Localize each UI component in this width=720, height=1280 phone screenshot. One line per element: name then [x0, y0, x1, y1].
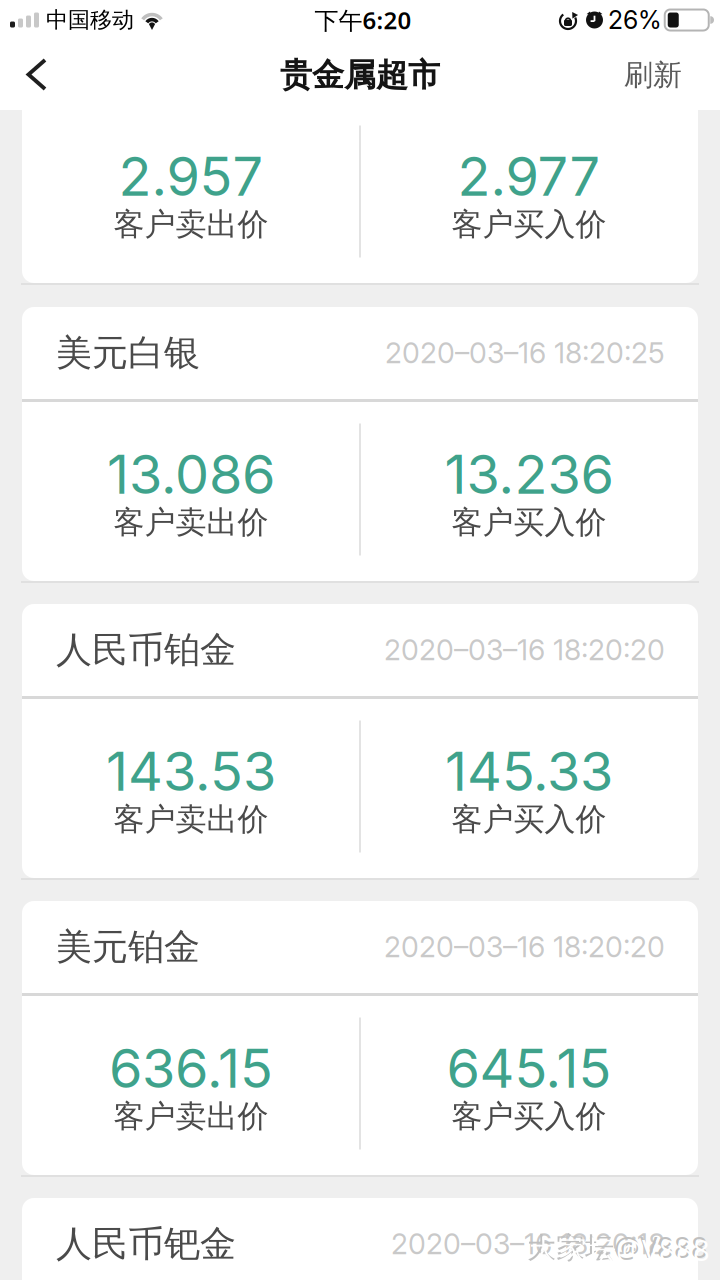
staticText: 636.15 [109, 1035, 273, 1101]
staticText: 刷新 [624, 57, 682, 93]
staticText: 客户买入价 [451, 205, 606, 244]
staticText: 2020–03–16 18:20:25 [385, 336, 665, 370]
staticText: 中国移动 [46, 6, 134, 34]
staticText: 人民币钯金 [56, 1221, 236, 1267]
staticText: 2.957 [118, 143, 263, 209]
staticText: 客户买入价 [451, 503, 606, 542]
staticText: 2020–03–16 18:20:25 [385, 38, 665, 72]
staticText: 客户卖出价 [113, 503, 268, 542]
button[interactable]: 美元铂金 [22, 901, 698, 1175]
staticText: 645.15 [446, 1035, 611, 1101]
staticText: 客户买入价 [451, 1097, 606, 1136]
staticText: 客户卖出价 [113, 800, 268, 839]
staticText: 贵金属超市 [280, 55, 440, 95]
staticText: 美元铂金 [56, 924, 200, 970]
button[interactable]: 人民币白银 [22, 9, 698, 283]
staticText: 人民币铂金 [56, 627, 236, 673]
button[interactable]: 返回 [0, 42, 67, 108]
staticText: 13.236 [444, 441, 613, 507]
button[interactable]: 人民币钯金 [22, 1198, 698, 1280]
staticText: 客户卖出价 [113, 1097, 268, 1136]
staticText: 2020–03–16 18:20:20 [384, 930, 665, 964]
staticText: 下午6:20 [314, 4, 411, 36]
staticText: 13.086 [107, 441, 275, 507]
staticText: 客户买入价 [451, 800, 606, 839]
staticText: 2.977 [457, 143, 600, 209]
staticText: 客户卖出价 [113, 205, 268, 244]
staticText: 大家坛@V888 [529, 1230, 710, 1269]
staticText: 美元白银 [56, 330, 200, 376]
staticText: 26% [608, 5, 662, 35]
button[interactable]: 人民币铂金 [22, 604, 698, 878]
staticText: 大家坛@V888 [527, 1227, 708, 1266]
button[interactable]: 刷新 [624, 39, 720, 111]
staticText: 2020–03–16 18:20:18 [391, 1227, 665, 1261]
button[interactable]: 美元白银 [22, 307, 698, 581]
staticText: 2020–03–16 18:20:20 [384, 633, 665, 667]
staticText: 145.33 [445, 738, 613, 804]
staticText: 143.53 [106, 738, 276, 804]
